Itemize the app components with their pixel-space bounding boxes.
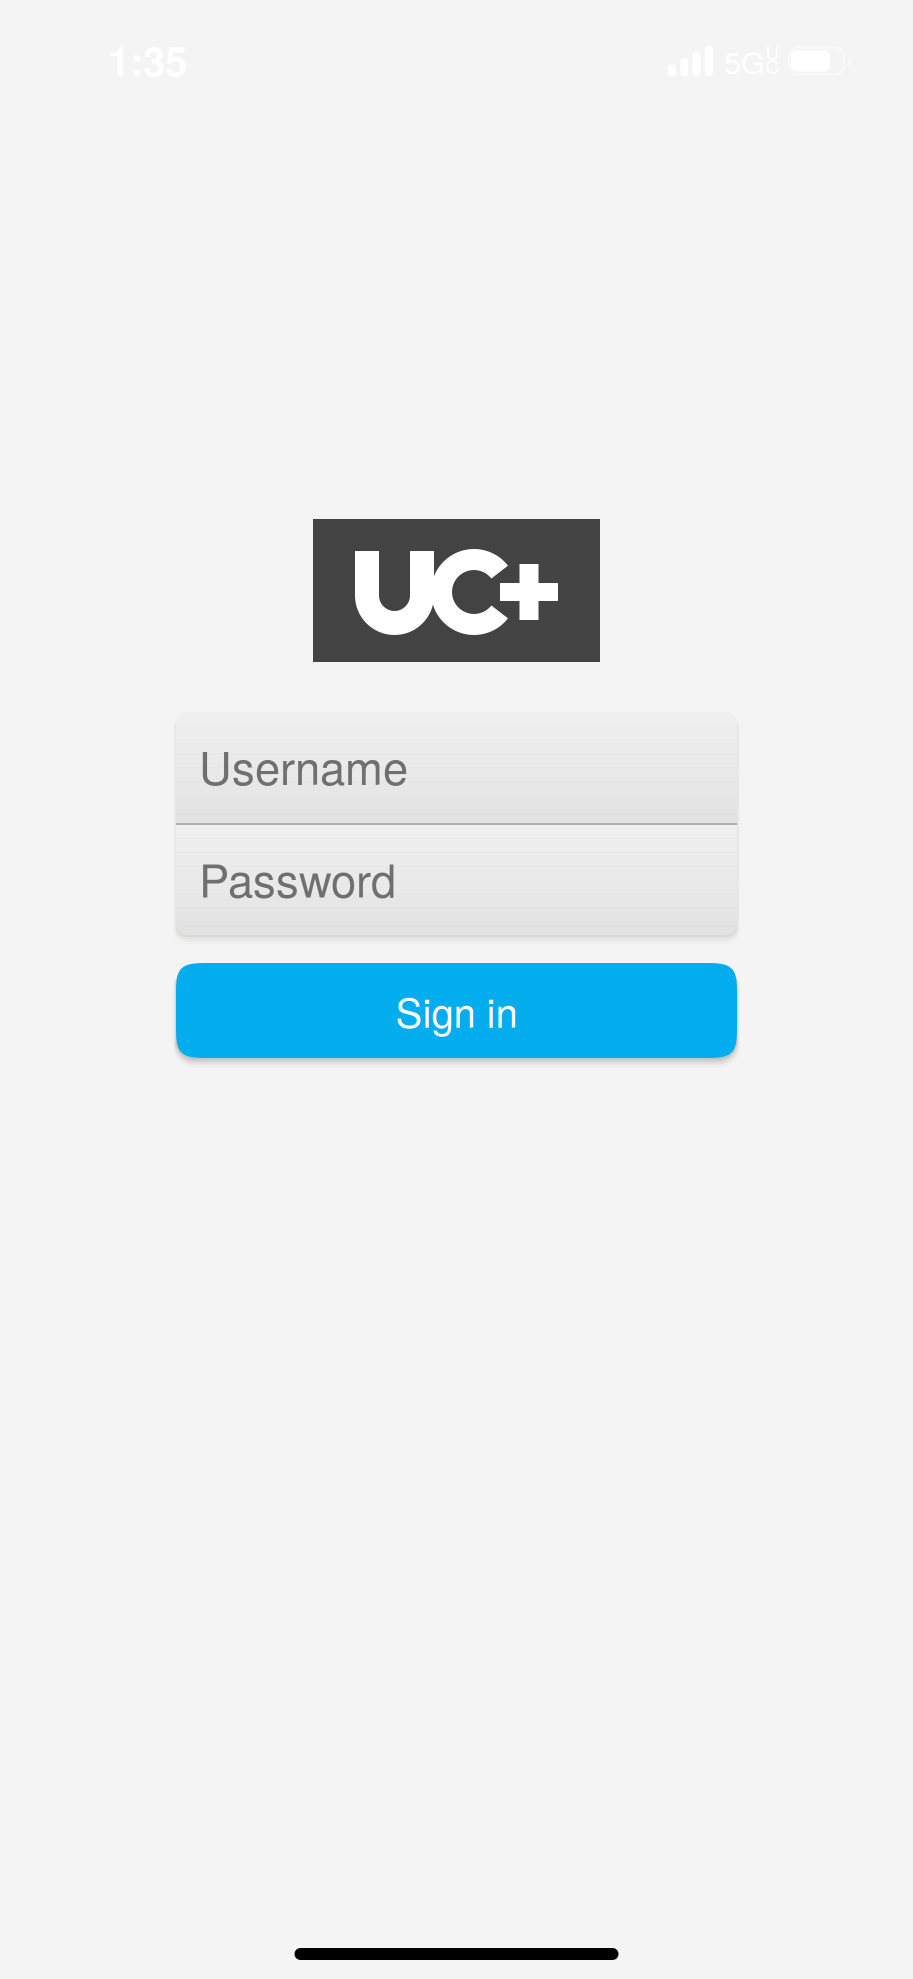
- staticText: Username: [199, 733, 408, 798]
- staticText: 5G: [724, 39, 765, 83]
- button[interactable]: Username: [176, 712, 737, 823]
- staticText: U: [765, 39, 778, 65]
- staticText: Password: [199, 845, 396, 910]
- staticText: C: [765, 53, 778, 79]
- button[interactable]: Sign in: [176, 963, 737, 1058]
- staticText: Sign in: [395, 982, 517, 1039]
- button[interactable]: Password: [176, 825, 737, 935]
- staticText: 1:35: [108, 31, 187, 89]
